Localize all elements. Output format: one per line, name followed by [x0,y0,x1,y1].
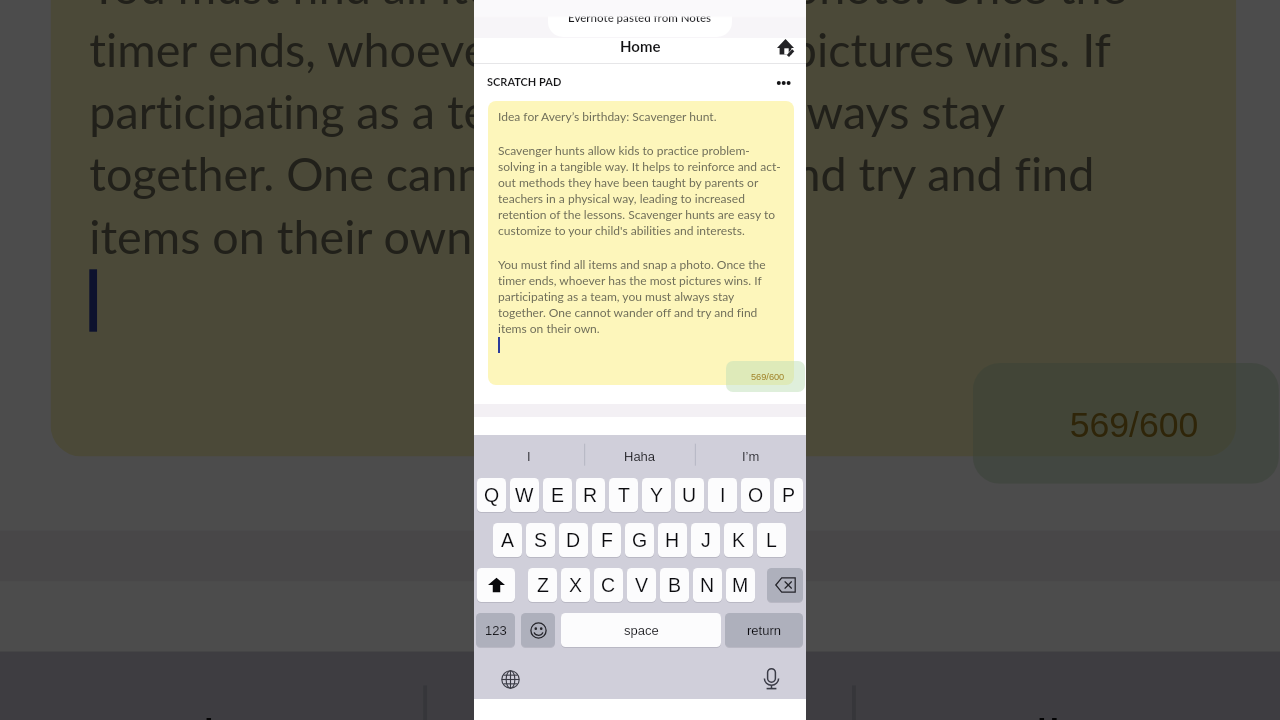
button[interactable]: Emoji [521,613,555,648]
staticText: H [665,529,680,551]
button[interactable]: Y [642,478,671,513]
staticText: 569/600 [751,372,785,382]
staticText: G [632,529,648,551]
button[interactable]: I’m [695,435,806,478]
button[interactable]: B [660,568,689,603]
button[interactable]: D [559,523,588,558]
staticText: I [202,706,217,720]
button[interactable]: F [592,523,621,558]
button[interactable]: X [561,568,590,603]
button[interactable]: W [510,478,539,513]
staticText: A [501,529,515,551]
button[interactable]: Next keyboard [499,668,521,690]
button[interactable]: Edit home screen [773,33,799,59]
staticText: W [515,484,534,506]
staticText: Scavenger hunts allow kids to practice p… [498,142,784,238]
staticText: I’m [1035,706,1105,720]
staticText: Q [484,484,500,506]
button[interactable]: S [526,523,555,558]
button[interactable]: Idea for Avery’s birthday: Scavenger hun… [488,101,794,385]
button[interactable]: Haha [584,435,695,478]
staticText: N [700,574,715,596]
button[interactable]: U [675,478,704,513]
button[interactable]: E [543,478,572,513]
staticText: U [682,484,697,506]
staticText: B [668,574,682,596]
staticText: O [748,484,764,506]
button[interactable]: return [725,613,803,648]
button[interactable]: M [726,568,755,603]
button[interactable]: P [774,478,803,513]
staticText: space [624,623,659,638]
button[interactable]: G [625,523,654,558]
staticText: M [732,574,749,596]
staticText: I [720,484,726,506]
button[interactable]: 569/600 [973,363,1279,484]
staticText: V [635,574,649,596]
button[interactable]: Z [528,568,557,603]
button[interactable]: A [493,523,522,558]
staticText: R [583,484,598,506]
button[interactable]: Evernote pasted from Notes [548,0,732,37]
staticText: C [601,574,616,596]
staticText: K [732,529,746,551]
button[interactable]: Backspace [767,568,803,603]
staticText: I [527,449,531,464]
button[interactable]: C [594,568,623,603]
staticText: 123 [485,623,507,638]
staticText: T [618,484,630,506]
button[interactable]: H [658,523,687,558]
button[interactable]: I [474,435,584,478]
staticText: SCRATCH PAD [487,75,562,88]
button[interactable]: 569/600 [726,361,805,392]
button[interactable]: V [627,568,656,603]
button[interactable]: J [691,523,720,558]
staticText: You must find all items and snap a photo… [498,256,784,336]
button[interactable]: Haha [422,651,853,720]
staticText: F [601,529,613,551]
staticText: 569/600 [1070,406,1201,445]
staticText: X [569,574,583,596]
button[interactable]: L [757,523,786,558]
staticText: Idea for Avery’s birthday: Scavenger hun… [498,108,717,124]
button[interactable]: R [576,478,605,513]
staticText: E [551,484,565,506]
staticText: Home [620,37,661,55]
staticText: Z [537,574,549,596]
button[interactable]: N [693,568,722,603]
staticText: Haha [624,449,656,464]
staticText: S [534,529,548,551]
button[interactable]: I [708,478,737,513]
button[interactable]: Shift [477,568,515,603]
staticText: P [782,484,796,506]
staticText: Evernote pasted from Notes [568,11,712,25]
staticText: D [566,529,581,551]
staticText: Y [650,484,664,506]
button[interactable]: Dictation [760,668,782,690]
button[interactable]: O [741,478,770,513]
button[interactable]: K [724,523,753,558]
staticText: I’m [742,449,760,464]
staticText: You must find all items and snap a photo… [89,0,1198,265]
button[interactable]: Q [477,478,506,513]
staticText: J [701,529,711,551]
button[interactable]: 123 [476,613,515,648]
button[interactable]: Idea for Avery’s birthday: Scavenger hun… [50,0,1236,456]
button[interactable]: More options [771,71,795,95]
button[interactable]: space [561,613,721,648]
staticText: L [766,529,777,551]
staticText: return [747,623,781,638]
button[interactable]: T [609,478,638,513]
